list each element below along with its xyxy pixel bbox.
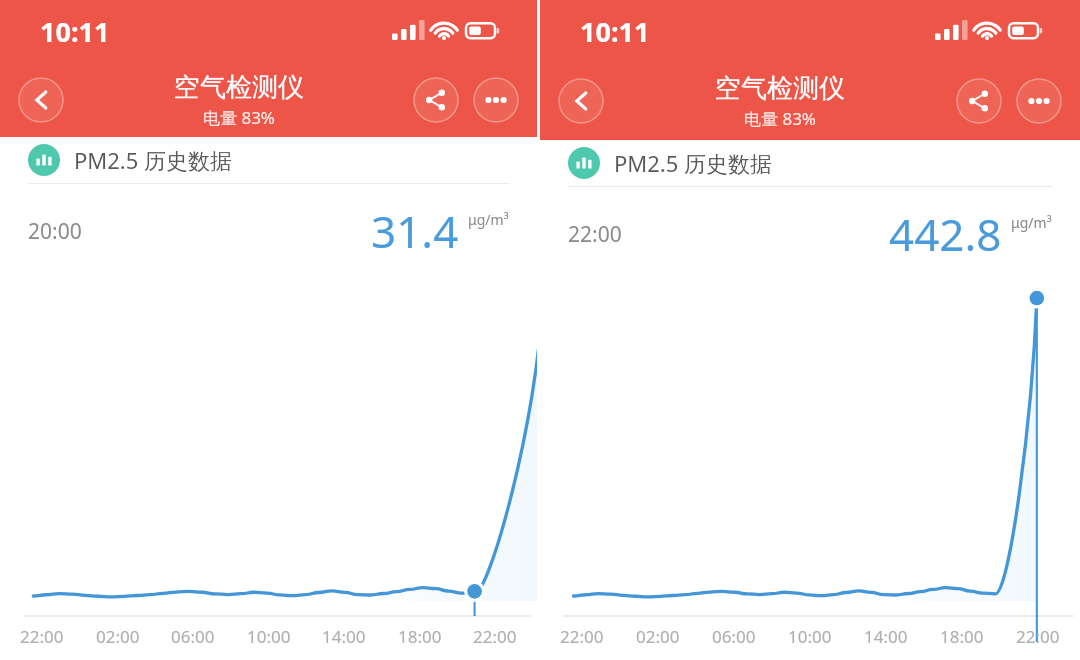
staticText: 22:00: [473, 625, 517, 648]
staticText: 442.8: [889, 204, 1002, 264]
staticText: 22:00: [560, 625, 604, 648]
staticText: 14:00: [864, 625, 908, 648]
staticText: 10:11: [40, 13, 110, 50]
staticText: 06:00: [712, 625, 756, 648]
button[interactable]: More options: [473, 77, 519, 123]
staticText: 20:00: [28, 217, 82, 246]
button[interactable]: Share: [956, 78, 1002, 124]
staticText: 22:00: [568, 220, 622, 249]
staticText: 10:11: [580, 13, 650, 50]
staticText: PM2.5 历史数据: [74, 145, 233, 175]
staticText: 10:00: [247, 625, 291, 648]
staticText: 06:00: [171, 625, 215, 648]
staticText: 31.4: [371, 201, 459, 261]
button[interactable]: Back: [18, 77, 64, 123]
staticText: μg/m³: [1011, 213, 1052, 232]
button[interactable]: More options: [1016, 78, 1062, 124]
staticText: PM2.5 历史数据: [614, 148, 773, 178]
staticText: 18:00: [398, 625, 442, 648]
staticText: 电量 83%: [744, 107, 816, 130]
button[interactable]: PM2.5 历史数据: [568, 140, 1080, 186]
staticText: 02:00: [636, 625, 680, 648]
staticText: 空气检测仪: [174, 71, 304, 104]
staticText: μg/m³: [468, 210, 509, 229]
staticText: 02:00: [96, 625, 140, 648]
button[interactable]: Share: [413, 77, 459, 123]
staticText: 18:00: [940, 625, 984, 648]
staticText: 22:00: [20, 625, 64, 648]
button[interactable]: Back: [558, 78, 604, 124]
button[interactable]: PM2.5 历史数据: [28, 137, 537, 183]
staticText: 电量 83%: [203, 106, 275, 129]
staticText: 14:00: [322, 625, 366, 648]
staticText: 空气检测仪: [715, 72, 845, 105]
staticText: 10:00: [788, 625, 832, 648]
staticText: 22:00: [1016, 625, 1060, 648]
